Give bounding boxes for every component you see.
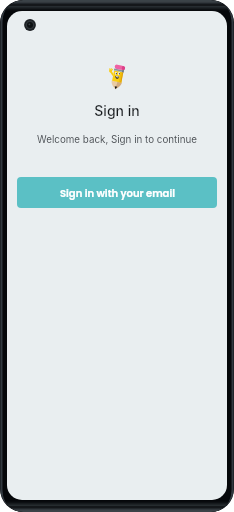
staticText: Sign in with your email	[60, 186, 175, 200]
button[interactable]: Sign in with your email	[17, 177, 217, 208]
staticText: Welcome back, Sign in to continue	[37, 134, 197, 146]
staticText: Sign in	[94, 102, 140, 119]
